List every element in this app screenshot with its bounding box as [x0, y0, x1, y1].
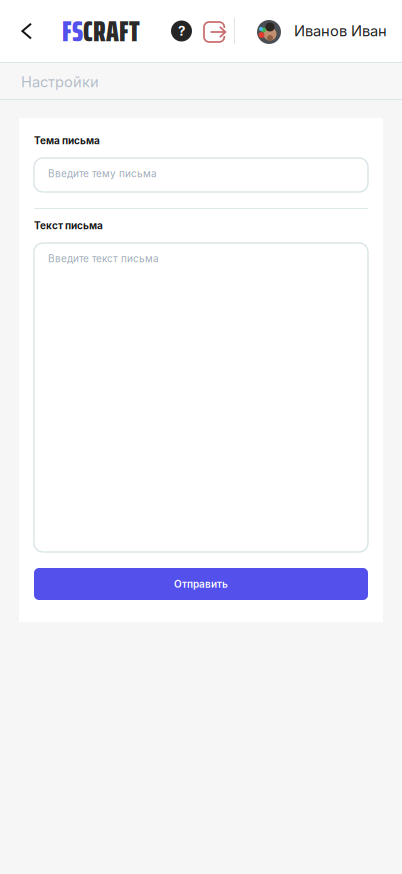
button[interactable]: Настройки: [13, 63, 107, 99]
staticText: Отправить: [174, 578, 228, 590]
staticText: Введите текст письма: [48, 252, 159, 265]
staticText: Текст письма: [34, 219, 103, 232]
staticText: FS: [62, 8, 83, 54]
button[interactable]: Log out: [203, 9, 226, 53]
staticText: CRAFT: [83, 8, 140, 54]
staticText: Введите тему письма: [48, 167, 157, 180]
staticText: Тема письма: [34, 134, 100, 147]
button[interactable]: FS: [62, 9, 140, 53]
button[interactable]: Иванов Иван: [257, 9, 387, 53]
staticText: Настройки: [21, 73, 99, 91]
staticText: Иванов Иван: [294, 22, 387, 40]
button[interactable]: Back: [13, 9, 40, 53]
button[interactable]: Отправить: [34, 568, 368, 600]
staticText: ?: [178, 23, 185, 39]
button[interactable]: Help: [171, 9, 192, 53]
